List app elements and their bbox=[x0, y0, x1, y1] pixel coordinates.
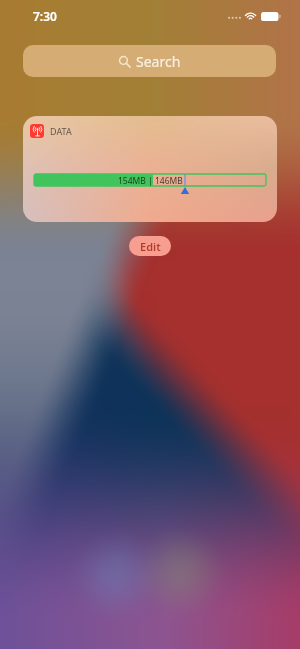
staticText: 7:30 bbox=[33, 8, 57, 24]
staticText: Edit bbox=[140, 239, 161, 254]
button[interactable]: Search bbox=[23, 45, 276, 77]
button[interactable]: Edit bbox=[129, 236, 171, 256]
staticText: DATA bbox=[50, 125, 72, 137]
staticText: 154MB | 146MB bbox=[118, 175, 183, 187]
staticText: Search bbox=[136, 52, 181, 71]
